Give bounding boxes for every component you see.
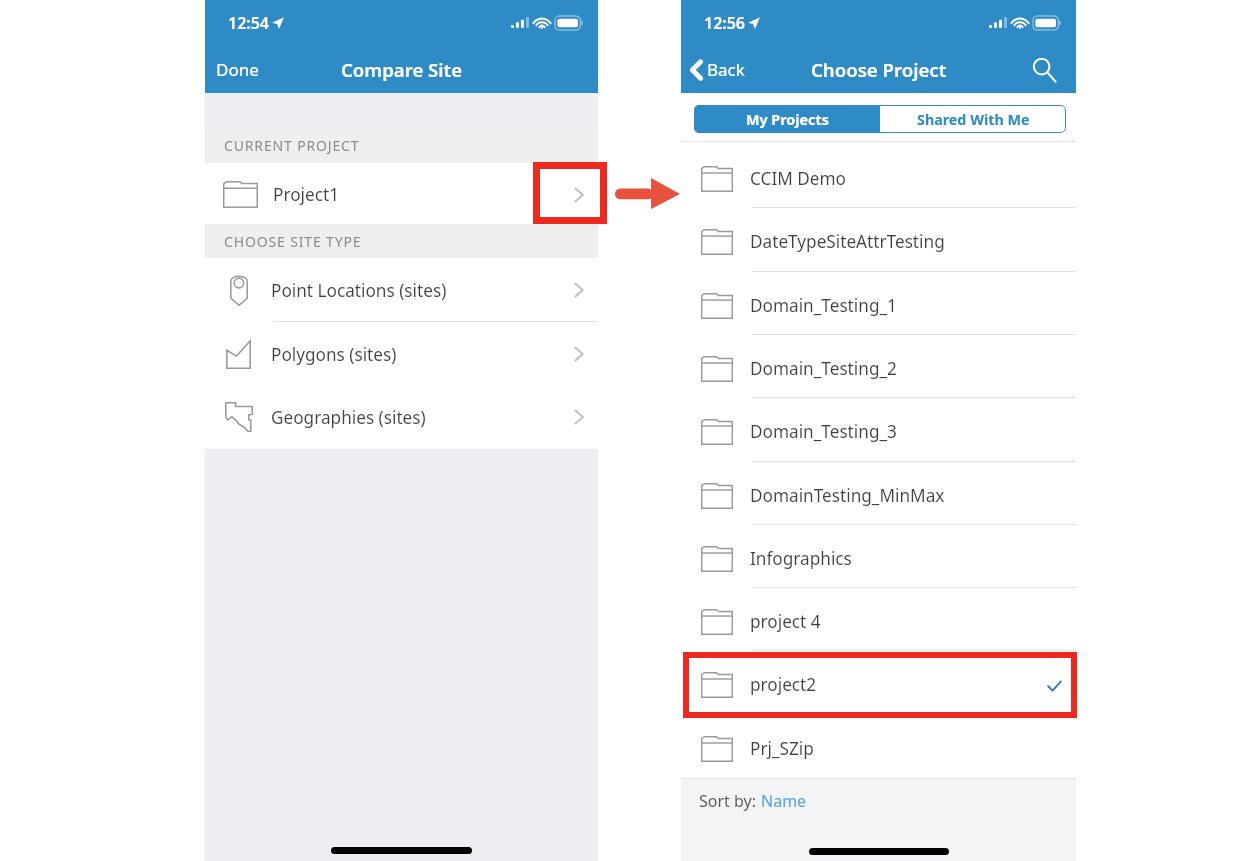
staticText: CHOOSE SITE TYPE bbox=[224, 232, 362, 251]
button[interactable]: Shared With Me bbox=[880, 105, 1066, 133]
button[interactable]: Domain_Testing_2 bbox=[681, 335, 1076, 398]
staticText: Sort by: bbox=[699, 790, 761, 812]
staticText: Compare Site bbox=[341, 57, 463, 82]
button[interactable]: Name bbox=[761, 790, 807, 812]
staticText: Polygons (sites) bbox=[271, 343, 397, 366]
button[interactable]: Polygons (sites) bbox=[205, 322, 598, 386]
staticText: Project1 bbox=[273, 183, 339, 206]
button[interactable]: Project1 bbox=[205, 163, 598, 224]
button[interactable]: Back bbox=[681, 46, 755, 93]
staticText: Domain_Testing_1 bbox=[750, 294, 897, 317]
button[interactable]: Search bbox=[1030, 46, 1076, 93]
button[interactable]: My Projects bbox=[694, 105, 880, 133]
staticText: CCIM Demo bbox=[750, 167, 846, 190]
staticText: My Projects bbox=[746, 110, 829, 129]
button[interactable]: Domain_Testing_3 bbox=[681, 398, 1076, 461]
button[interactable]: Done bbox=[205, 46, 271, 93]
button[interactable]: Point Locations (sites) bbox=[205, 258, 598, 322]
button[interactable]: Infographics bbox=[681, 525, 1076, 588]
staticText: Infographics bbox=[750, 547, 852, 570]
button[interactable]: CCIM Demo bbox=[681, 145, 1076, 208]
staticText: CURRENT PROJECT bbox=[224, 136, 360, 155]
staticText: Name bbox=[761, 790, 807, 812]
button[interactable]: DomainTesting_MinMax bbox=[681, 462, 1076, 525]
staticText: Point Locations (sites) bbox=[271, 279, 447, 302]
staticText: Shared With Me bbox=[917, 110, 1030, 129]
staticText: 12:56 bbox=[704, 12, 746, 34]
staticText: DomainTesting_MinMax bbox=[750, 484, 945, 507]
staticText: project2 bbox=[750, 673, 817, 696]
button[interactable]: Prj_SZip bbox=[681, 715, 1076, 778]
staticText: project 4 bbox=[750, 610, 821, 633]
staticText: Prj_SZip bbox=[750, 737, 814, 760]
button[interactable]: project2 bbox=[681, 651, 1076, 714]
staticText: DateTypeSiteAttrTesting bbox=[750, 230, 945, 253]
staticText: Domain_Testing_3 bbox=[750, 420, 897, 443]
button[interactable]: DateTypeSiteAttrTesting bbox=[681, 208, 1076, 271]
button[interactable]: project 4 bbox=[681, 588, 1076, 651]
staticText: Domain_Testing_2 bbox=[750, 357, 897, 380]
staticText: Done bbox=[216, 58, 259, 81]
button[interactable]: Geographies (sites) bbox=[205, 385, 598, 449]
staticText: 12:54 bbox=[228, 12, 270, 34]
staticText: Back bbox=[707, 58, 745, 81]
staticText: Choose Project bbox=[811, 57, 947, 82]
staticText: Geographies (sites) bbox=[271, 406, 426, 429]
button[interactable]: Domain_Testing_1 bbox=[681, 272, 1076, 335]
